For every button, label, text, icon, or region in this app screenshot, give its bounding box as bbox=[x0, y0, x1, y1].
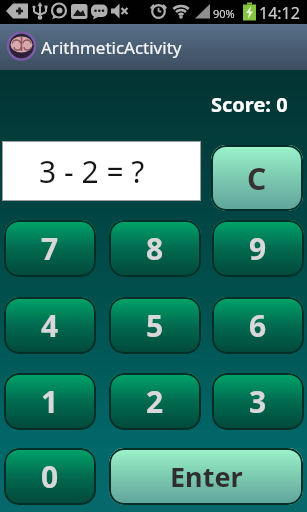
staticText: 6 bbox=[249, 305, 267, 346]
button[interactable]: 8 bbox=[109, 220, 201, 277]
staticText: 3 bbox=[249, 381, 267, 422]
staticText: 1 bbox=[41, 381, 59, 422]
button[interactable]: 1 bbox=[4, 373, 96, 430]
button[interactable]: 5 bbox=[109, 297, 201, 354]
staticText: 4 bbox=[41, 305, 59, 346]
button[interactable]: 3 bbox=[212, 373, 304, 430]
button[interactable]: 2 bbox=[109, 373, 201, 430]
staticText: 14:12 bbox=[259, 2, 300, 24]
staticText: 8 bbox=[146, 228, 164, 269]
button[interactable]: 4 bbox=[4, 297, 96, 354]
button[interactable]: 6 bbox=[212, 297, 304, 354]
staticText: Enter bbox=[170, 458, 243, 495]
staticText: 3 - 2 = ? bbox=[39, 151, 145, 192]
staticText: 2 bbox=[146, 381, 164, 422]
staticText: 7 bbox=[41, 228, 59, 269]
staticText: 9 bbox=[249, 228, 267, 269]
button[interactable]: 7 bbox=[4, 220, 96, 277]
staticText: 0 bbox=[41, 456, 59, 497]
button[interactable]: 9 bbox=[212, 220, 304, 277]
staticText: ArithmeticActivity bbox=[41, 36, 182, 59]
staticText: 90% bbox=[213, 6, 235, 21]
button[interactable]: C bbox=[211, 145, 303, 211]
button[interactable]: Enter bbox=[109, 448, 303, 505]
staticText: Score: 0 bbox=[211, 91, 288, 118]
staticText: 5 bbox=[146, 305, 164, 346]
button[interactable]: 0 bbox=[4, 448, 96, 505]
staticText: C bbox=[247, 158, 267, 199]
